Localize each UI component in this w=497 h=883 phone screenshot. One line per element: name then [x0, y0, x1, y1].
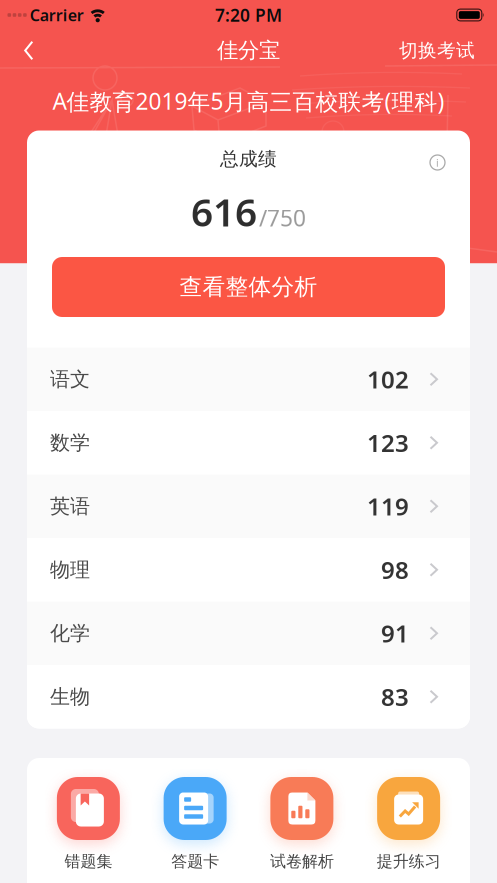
staticText: 英语 [50, 494, 90, 519]
button[interactable]: Info [430, 151, 470, 166]
staticText: 生物 [50, 684, 90, 709]
staticText: 123 [367, 427, 409, 459]
button[interactable]: 语文 [27, 347, 470, 411]
button[interactable]: 试卷解析 [248, 777, 355, 871]
button[interactable]: 切换考试 [399, 31, 497, 70]
staticText: /750 [259, 203, 306, 233]
staticText: 98 [381, 554, 409, 586]
staticText: 总成绩 [220, 147, 277, 170]
button[interactable]: 查看整体分析 [52, 257, 445, 317]
staticText: 数学 [50, 430, 90, 455]
button[interactable]: 答题卡 [142, 777, 249, 871]
button[interactable]: 化学 [27, 601, 470, 665]
staticText: 佳分宝 [217, 37, 280, 64]
staticText: Carrier [30, 4, 84, 26]
staticText: 查看整体分析 [179, 273, 317, 301]
button[interactable]: 数学 [27, 411, 470, 474]
staticText: 答题卡 [171, 851, 219, 871]
button[interactable]: 物理 [27, 538, 470, 601]
button[interactable]: Back [0, 30, 33, 70]
staticText: 83 [381, 681, 409, 713]
staticText: 错题集 [64, 851, 112, 871]
staticText: 102 [367, 363, 409, 395]
staticText: 语文 [50, 367, 90, 392]
staticText: 试卷解析 [270, 851, 334, 871]
button[interactable]: 生物 [27, 665, 470, 728]
staticText: 7:20 PM [215, 3, 282, 26]
staticText: 切换考试 [399, 39, 475, 62]
staticText: 提升练习 [377, 851, 441, 871]
button[interactable]: 错题集 [35, 777, 142, 871]
staticText: i [436, 155, 439, 170]
staticText: 119 [367, 490, 409, 522]
staticText: 91 [381, 617, 409, 649]
button[interactable]: 英语 [27, 474, 470, 538]
staticText: 物理 [50, 557, 90, 582]
button[interactable]: 提升练习 [355, 777, 462, 871]
staticText: 616 [191, 186, 257, 237]
staticText: 化学 [50, 621, 90, 646]
staticText: A佳教育2019年5月高三百校联考(理科) [52, 86, 444, 116]
